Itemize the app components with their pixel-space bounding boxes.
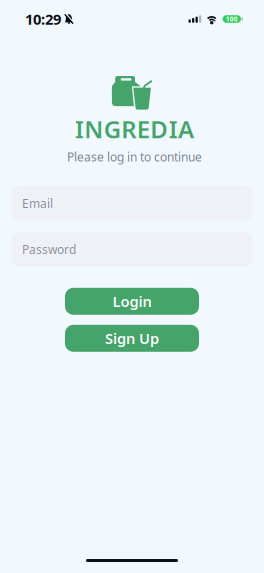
button[interactable]: Login <box>65 288 199 315</box>
staticText: Login <box>112 292 151 311</box>
staticText: INGREDIA <box>75 113 194 145</box>
button[interactable]: Sign Up <box>65 325 199 352</box>
staticText: Email <box>22 195 53 211</box>
staticText: Please log in to continue <box>67 149 202 165</box>
staticText: Sign Up <box>105 329 159 348</box>
staticText: 100 <box>226 15 238 23</box>
button[interactable]: Email <box>11 186 252 221</box>
staticText: Password <box>22 241 76 257</box>
staticText: 10:29 <box>25 9 61 29</box>
button[interactable]: Password <box>11 232 252 267</box>
